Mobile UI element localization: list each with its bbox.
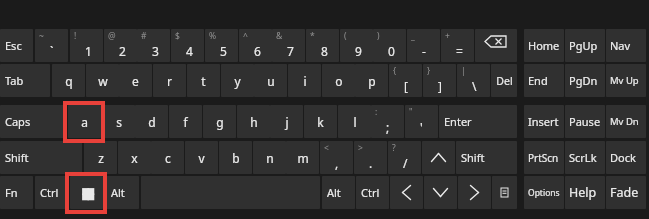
button[interactable]: Del: [491, 64, 517, 97]
staticText: k: [317, 114, 324, 130]
button[interactable]: Ctrl: [356, 176, 389, 209]
button[interactable]: Shift: [0, 141, 82, 174]
button[interactable]: q: [52, 64, 85, 97]
staticText: m: [297, 150, 309, 166]
button[interactable]: i: [288, 64, 321, 97]
button[interactable]: h: [237, 105, 270, 138]
button[interactable]: g: [203, 105, 236, 138]
button[interactable]: <: [320, 141, 353, 174]
button[interactable]: Dock: [606, 141, 646, 174]
button[interactable]: n: [253, 141, 286, 174]
button[interactable]: Options: [524, 176, 564, 209]
button[interactable]: ): [373, 29, 406, 62]
button[interactable]: !: [70, 29, 103, 62]
button[interactable]: Ctrl: [35, 176, 68, 209]
button[interactable]: d: [135, 105, 168, 138]
staticText: n: [266, 150, 274, 166]
staticText: Ctrl: [361, 185, 380, 200]
button[interactable]: PgUp: [565, 29, 605, 62]
button[interactable]: ScrLk: [565, 141, 605, 174]
button[interactable]: #: [137, 29, 170, 62]
button[interactable]: Fade: [606, 176, 646, 209]
button[interactable]: Arrow down: [424, 176, 457, 209]
button[interactable]: $: [171, 29, 204, 62]
button[interactable]: Help: [565, 176, 605, 209]
button[interactable]: Windows: [70, 176, 103, 209]
button[interactable]: b: [219, 141, 252, 174]
button[interactable]: Home: [524, 29, 564, 62]
button[interactable]: %: [205, 29, 238, 62]
button[interactable]: c: [151, 141, 184, 174]
button[interactable]: w: [86, 64, 119, 97]
button[interactable]: Enter: [439, 105, 517, 138]
button[interactable]: ?: [388, 141, 421, 174]
button[interactable]: {: [389, 64, 422, 97]
button[interactable]: t: [187, 64, 220, 97]
button[interactable]: }: [423, 64, 456, 97]
button[interactable]: ~: [35, 29, 68, 62]
button[interactable]: l: [338, 105, 371, 138]
button[interactable]: +: [441, 29, 474, 62]
staticText: Insert: [528, 114, 559, 129]
button[interactable]: y: [221, 64, 254, 97]
button[interactable]: Fn: [0, 176, 33, 209]
button[interactable]: |: [457, 64, 490, 97]
staticText: s: [116, 114, 122, 130]
button[interactable]: Backspace: [475, 29, 517, 62]
staticText: Alt: [327, 185, 341, 200]
button[interactable]: ^: [239, 29, 272, 62]
button[interactable]: Nav: [606, 29, 646, 62]
button[interactable]: :: [371, 105, 404, 138]
button[interactable]: End: [524, 64, 564, 97]
button[interactable]: _: [407, 29, 440, 62]
staticText: Shift: [461, 150, 485, 165]
button[interactable]: PrtScn: [524, 141, 564, 174]
button[interactable]: Esc: [0, 29, 33, 62]
button[interactable]: Arrow up: [422, 141, 455, 174]
button[interactable]: Caps: [0, 105, 66, 138]
button[interactable]: Mv Dn: [606, 105, 646, 138]
button[interactable]: m: [286, 141, 319, 174]
staticText: ScrLk: [569, 150, 597, 165]
button[interactable]: p: [355, 64, 388, 97]
button[interactable]: s: [102, 105, 135, 138]
button[interactable]: Tab: [0, 64, 50, 97]
staticText: !: [74, 30, 77, 42]
button[interactable]: o: [322, 64, 355, 97]
button[interactable]: @: [104, 29, 137, 62]
button[interactable]: Menu: [492, 176, 517, 209]
staticText: 4: [186, 43, 193, 59]
button[interactable]: Arrow right: [458, 176, 491, 209]
button[interactable]: *: [306, 29, 339, 62]
staticText: c: [165, 150, 171, 166]
staticText: *: [310, 30, 315, 42]
button[interactable]: >: [354, 141, 387, 174]
button[interactable]: r: [153, 64, 186, 97]
button[interactable]: Arrow left: [390, 176, 423, 209]
button[interactable]: u: [254, 64, 287, 97]
staticText: ^: [243, 30, 248, 42]
staticText: x: [131, 150, 138, 166]
button[interactable]: j: [270, 105, 303, 138]
button[interactable]: Alt: [322, 176, 355, 209]
button[interactable]: &: [272, 29, 305, 62]
staticText: y: [234, 73, 241, 89]
button[interactable]: x: [118, 141, 151, 174]
button[interactable]: ": [405, 105, 438, 138]
staticText: Ctrl: [40, 185, 59, 200]
button[interactable]: Insert: [524, 105, 564, 138]
button[interactable]: Pause: [565, 105, 605, 138]
button[interactable]: e: [119, 64, 152, 97]
button[interactable]: Alt: [106, 176, 139, 209]
button[interactable]: Shift: [456, 141, 517, 174]
button[interactable]: k: [304, 105, 337, 138]
button[interactable]: Mv Up: [606, 64, 646, 97]
button[interactable]: f: [169, 105, 202, 138]
button[interactable]: (: [340, 29, 373, 62]
button[interactable]: z: [84, 141, 117, 174]
staticText: |: [461, 65, 466, 77]
button[interactable]: v: [185, 141, 218, 174]
button[interactable]: PgDn: [565, 64, 605, 97]
button[interactable]: a: [68, 105, 101, 138]
